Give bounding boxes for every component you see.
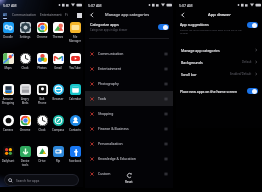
staticText: Clock — [34, 128, 50, 132]
button[interactable]: Chrome — [34, 20, 50, 39]
staticText: Reset — [125, 180, 133, 184]
button[interactable]: Calendar — [67, 81, 83, 101]
staticText: Photography — [98, 81, 119, 86]
staticText: Entertainment — [98, 66, 122, 71]
button[interactable]: Back — [179, 11, 187, 19]
staticText: Search for apps — [16, 179, 40, 183]
button[interactable]: Entertainment — [90, 61, 168, 76]
button[interactable]: App suggestions — [180, 22, 258, 37]
staticText: Personalization — [98, 141, 123, 146]
staticText: Chrome — [17, 128, 33, 132]
button[interactable]: Contacts — [67, 112, 83, 132]
staticText: App drawer — [208, 12, 231, 18]
button[interactable]: Entertainment — [40, 13, 62, 17]
button[interactable]: Compass — [50, 112, 66, 132]
button[interactable]: Facebook — [67, 143, 83, 163]
button[interactable]: Place new apps on the home screen — [180, 85, 258, 97]
staticText: Angry Birds — [17, 97, 33, 104]
button[interactable]: Doodle — [0, 20, 16, 39]
staticText: Backgrounds — [181, 60, 203, 65]
button[interactable]: Categorize apps — [90, 19, 169, 35]
button[interactable]: Toggle — [158, 24, 169, 30]
button[interactable]: Dailyhunt — [0, 143, 16, 163]
staticText: Scroll bar — [181, 72, 197, 77]
button[interactable]: Finance & Business — [90, 121, 168, 136]
staticText: Dailyhunt — [0, 159, 16, 163]
button[interactable]: Flip — [50, 143, 66, 163]
staticText: File Manager — [67, 35, 83, 42]
button[interactable]: Drive — [34, 143, 50, 163]
staticText: Shopping — [98, 111, 114, 116]
button[interactable]: Gmail — [50, 50, 66, 70]
button[interactable]: Shopping — [90, 106, 168, 121]
button[interactable]: Device tools — [17, 143, 33, 166]
staticText: Facebook — [67, 159, 83, 163]
staticText: Enabled/Default — [230, 72, 252, 76]
staticText: Entertainment — [40, 13, 62, 17]
staticText: Contacts — [67, 128, 83, 132]
button[interactable]: Custom — [90, 166, 168, 181]
staticText: Fi — [65, 13, 68, 17]
staticText: Manage app categories — [181, 48, 220, 53]
staticText: Browser — [50, 97, 66, 101]
button[interactable]: Amazon Shopping — [0, 81, 16, 104]
button[interactable]: Toggle — [247, 88, 258, 94]
button[interactable]: Clock — [34, 112, 50, 132]
button[interactable]: Scroll bar — [181, 68, 258, 80]
staticText: Themes — [50, 35, 66, 39]
button[interactable]: Toggle — [247, 22, 258, 28]
staticText: Custom — [98, 171, 111, 176]
button[interactable]: Search for apps — [4, 174, 79, 186]
button[interactable]: Angry Birds — [17, 81, 33, 104]
staticText: Knowledge & Education — [98, 156, 136, 161]
button[interactable]: Back — [88, 11, 96, 19]
button[interactable]: Maps — [0, 50, 16, 70]
staticText: Display the most frequently used apps in… — [180, 28, 243, 34]
staticText: Drive — [34, 159, 50, 163]
staticText: 5:07 AM — [179, 3, 193, 8]
button[interactable]: Themes — [50, 20, 66, 39]
staticText: Compass — [50, 128, 66, 132]
button[interactable]: Backgrounds — [181, 56, 258, 68]
button[interactable]: Communication — [12, 13, 36, 17]
staticText: Photos — [34, 66, 50, 70]
staticText: Tools — [98, 96, 107, 101]
staticText: Communication — [12, 13, 36, 17]
staticText: Doodle — [0, 35, 16, 39]
staticText: Chrome — [34, 35, 50, 39]
staticText: Clock — [17, 66, 33, 70]
button[interactable]: Camera — [0, 112, 16, 132]
staticText: 5:07 AM — [3, 3, 17, 8]
staticText: Finance & Business — [98, 126, 129, 131]
staticText: Flip — [50, 159, 66, 163]
staticText: Amazon Shopping — [0, 97, 16, 104]
staticText: Bolt Phone — [34, 97, 50, 104]
staticText: Camera — [0, 128, 16, 132]
staticText: Categorize apps in App drawer — [90, 28, 128, 32]
button[interactable]: Browser — [50, 81, 66, 101]
staticText: Device tools — [17, 159, 33, 166]
button[interactable]: Clock — [17, 50, 33, 70]
button[interactable]: Photography — [90, 76, 168, 91]
staticText: Calendar — [67, 97, 83, 101]
button[interactable]: File Manager — [67, 20, 83, 42]
button[interactable]: Knowledge & Education — [90, 151, 168, 166]
button[interactable]: Communication — [90, 46, 168, 61]
button[interactable]: Personalization — [90, 136, 168, 151]
staticText: Manage app categories — [105, 12, 150, 17]
staticText: Settings — [17, 35, 33, 39]
button[interactable]: Chrome — [17, 112, 33, 132]
button[interactable]: All — [3, 13, 7, 17]
staticText: Gmail — [50, 66, 66, 70]
button[interactable]: Bolt Phone — [34, 81, 50, 104]
button[interactable]: Reset — [125, 172, 133, 184]
button[interactable]: Photos — [34, 50, 50, 70]
button[interactable]: Settings — [17, 20, 33, 39]
button[interactable]: Tools — [90, 91, 168, 106]
button[interactable]: YouTube — [67, 50, 83, 70]
staticText: All — [3, 13, 7, 17]
button[interactable]: Manage app categories — [181, 44, 258, 56]
staticText: Place new apps on the home screen — [180, 89, 238, 94]
staticText: Default — [242, 60, 252, 64]
